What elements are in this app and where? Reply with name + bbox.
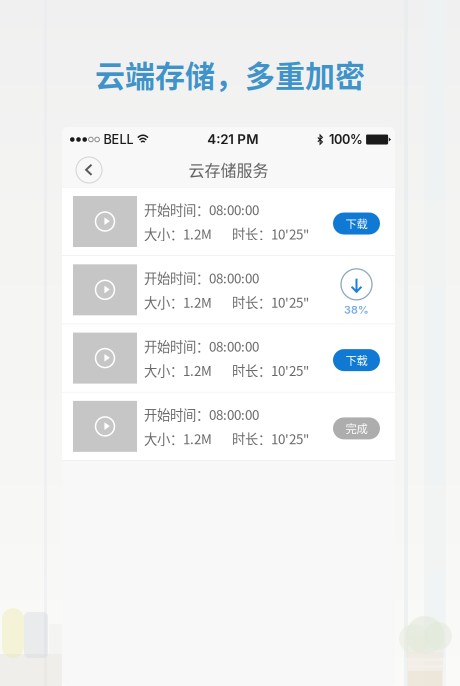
staticText: 大小：1.2M	[144, 429, 212, 448]
staticText: 时长：10'25"	[232, 224, 309, 243]
staticText: BELL	[103, 132, 133, 147]
staticText: 大小：1.2M	[144, 292, 212, 312]
staticText: 开始时间：08:00:00	[144, 200, 259, 219]
button[interactable]: Back	[73, 154, 105, 186]
staticText: 时长：10'25"	[232, 429, 309, 448]
staticText: 云端存储，多重加密	[95, 52, 365, 96]
button[interactable]: 下载	[333, 349, 380, 371]
staticText: 云存储服务	[188, 158, 268, 181]
staticText: 时长：10'25"	[232, 361, 309, 380]
staticText: 38%	[344, 303, 369, 316]
staticText: 完成	[345, 420, 367, 437]
staticText: 大小：1.2M	[144, 361, 212, 380]
staticText: 开始时间：08:00:00	[144, 268, 259, 287]
staticText: 开始时间：08:00:00	[144, 405, 259, 424]
staticText: 4:21 PM	[207, 131, 258, 147]
button[interactable]: 下载	[333, 212, 380, 234]
staticText: 大小：1.2M	[144, 224, 212, 243]
button[interactable]: 38%	[333, 265, 380, 314]
staticText: 时长：10'25"	[232, 292, 309, 312]
staticText: 100%	[329, 132, 363, 147]
staticText: 下载	[345, 215, 367, 232]
staticText: 开始时间：08:00:00	[144, 336, 259, 356]
button[interactable]: 完成	[333, 417, 380, 439]
staticText: 下载	[345, 352, 367, 368]
